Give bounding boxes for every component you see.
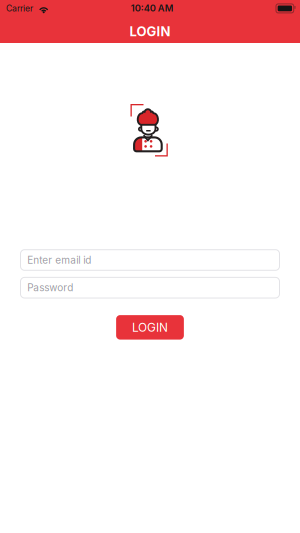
staticText: Password bbox=[27, 282, 73, 294]
button[interactable]: LOGIN bbox=[116, 315, 184, 340]
staticText: LOGIN bbox=[132, 320, 168, 335]
staticText: Carrier bbox=[6, 3, 33, 14]
staticText: Enter email id bbox=[27, 254, 91, 266]
staticText: LOGIN bbox=[129, 24, 170, 39]
staticText: 10:40 AM bbox=[131, 2, 174, 14]
